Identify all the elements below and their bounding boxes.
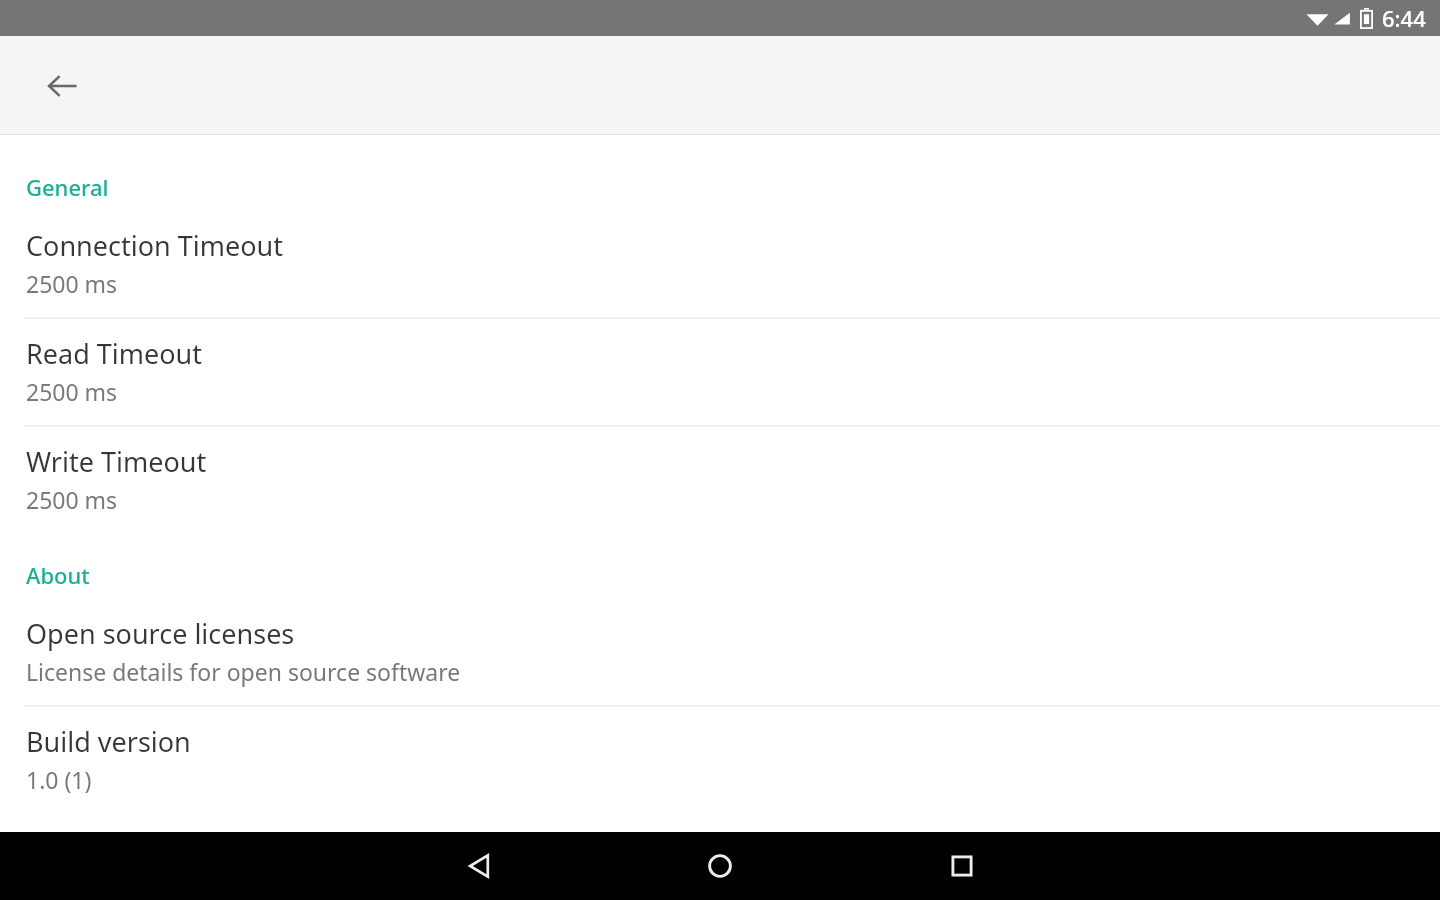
button[interactable]: Connection Timeout (0, 211, 1440, 317)
button[interactable]: Read Timeout (0, 319, 1440, 425)
staticText: License details for open source software (26, 656, 461, 687)
staticText: About (26, 560, 90, 590)
button[interactable]: Recent apps (910, 832, 1014, 900)
button[interactable]: Write Timeout (0, 427, 1440, 533)
button[interactable]: Open source licenses (0, 599, 1440, 705)
staticText: Connection Timeout (26, 227, 283, 264)
button[interactable]: Back (428, 832, 532, 900)
staticText: 2500 ms (26, 376, 118, 407)
staticText: Open source licenses (26, 615, 295, 652)
staticText: 1.0 (1) (26, 764, 92, 795)
staticText: 2500 ms (26, 484, 118, 515)
button[interactable]: Back (26, 50, 98, 122)
staticText: 6:44 (1382, 3, 1426, 33)
staticText: General (26, 172, 109, 202)
button[interactable]: Build version (0, 707, 1440, 813)
button[interactable]: Home (668, 832, 772, 900)
staticText: Write Timeout (26, 443, 207, 480)
staticText: 2500 ms (26, 268, 118, 299)
staticText: Build version (26, 723, 191, 760)
staticText: Read Timeout (26, 335, 203, 372)
